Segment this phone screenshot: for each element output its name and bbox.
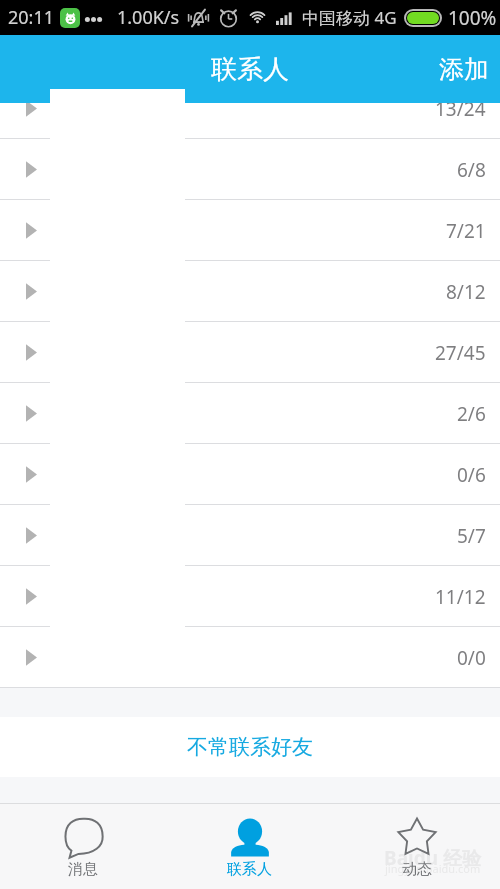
- staticText: 中国移动 4G: [302, 6, 397, 29]
- staticText: 8/12: [446, 279, 486, 305]
- button[interactable]: 添加: [423, 44, 500, 95]
- button[interactable]: 0/6: [0, 444, 500, 505]
- button[interactable]: 不常联系好友: [0, 717, 500, 777]
- staticText: 0/0: [457, 645, 486, 671]
- staticText: Baidu 经验: [384, 845, 481, 871]
- staticText: 20:11: [8, 5, 55, 30]
- staticText: 100%: [448, 5, 497, 31]
- staticText: 7/21: [446, 218, 486, 244]
- button[interactable]: 消息: [0, 804, 166, 889]
- button[interactable]: 27/45: [0, 322, 500, 383]
- staticText: 联系人: [227, 860, 272, 879]
- staticText: 5/7: [457, 523, 486, 549]
- staticText: 6/8: [457, 157, 486, 183]
- button[interactable]: 联系人: [166, 804, 333, 889]
- staticText: 消息: [68, 860, 98, 879]
- staticText: 添加: [439, 54, 489, 85]
- staticText: 2/6: [457, 401, 486, 427]
- staticText: jingyan.baidu.com: [385, 861, 481, 876]
- button[interactable]: 6/8: [0, 139, 500, 200]
- staticText: 动态: [402, 860, 432, 879]
- staticText: 0/6: [457, 462, 486, 488]
- staticText: 不常联系好友: [187, 734, 313, 760]
- button[interactable]: 11/12: [0, 566, 500, 627]
- staticText: 13/24: [435, 103, 486, 122]
- button[interactable]: 8/12: [0, 261, 500, 322]
- button[interactable]: 0/0: [0, 627, 500, 688]
- staticText: 联系人: [211, 53, 289, 86]
- button[interactable]: 2/6: [0, 383, 500, 444]
- button[interactable]: 5/7: [0, 505, 500, 566]
- staticText: 11/12: [435, 584, 486, 610]
- button[interactable]: 13/24: [0, 103, 500, 139]
- staticText: 27/45: [435, 340, 486, 366]
- staticText: 1.00K/s: [117, 5, 180, 30]
- button[interactable]: 7/21: [0, 200, 500, 261]
- button[interactable]: 动态: [333, 804, 500, 889]
